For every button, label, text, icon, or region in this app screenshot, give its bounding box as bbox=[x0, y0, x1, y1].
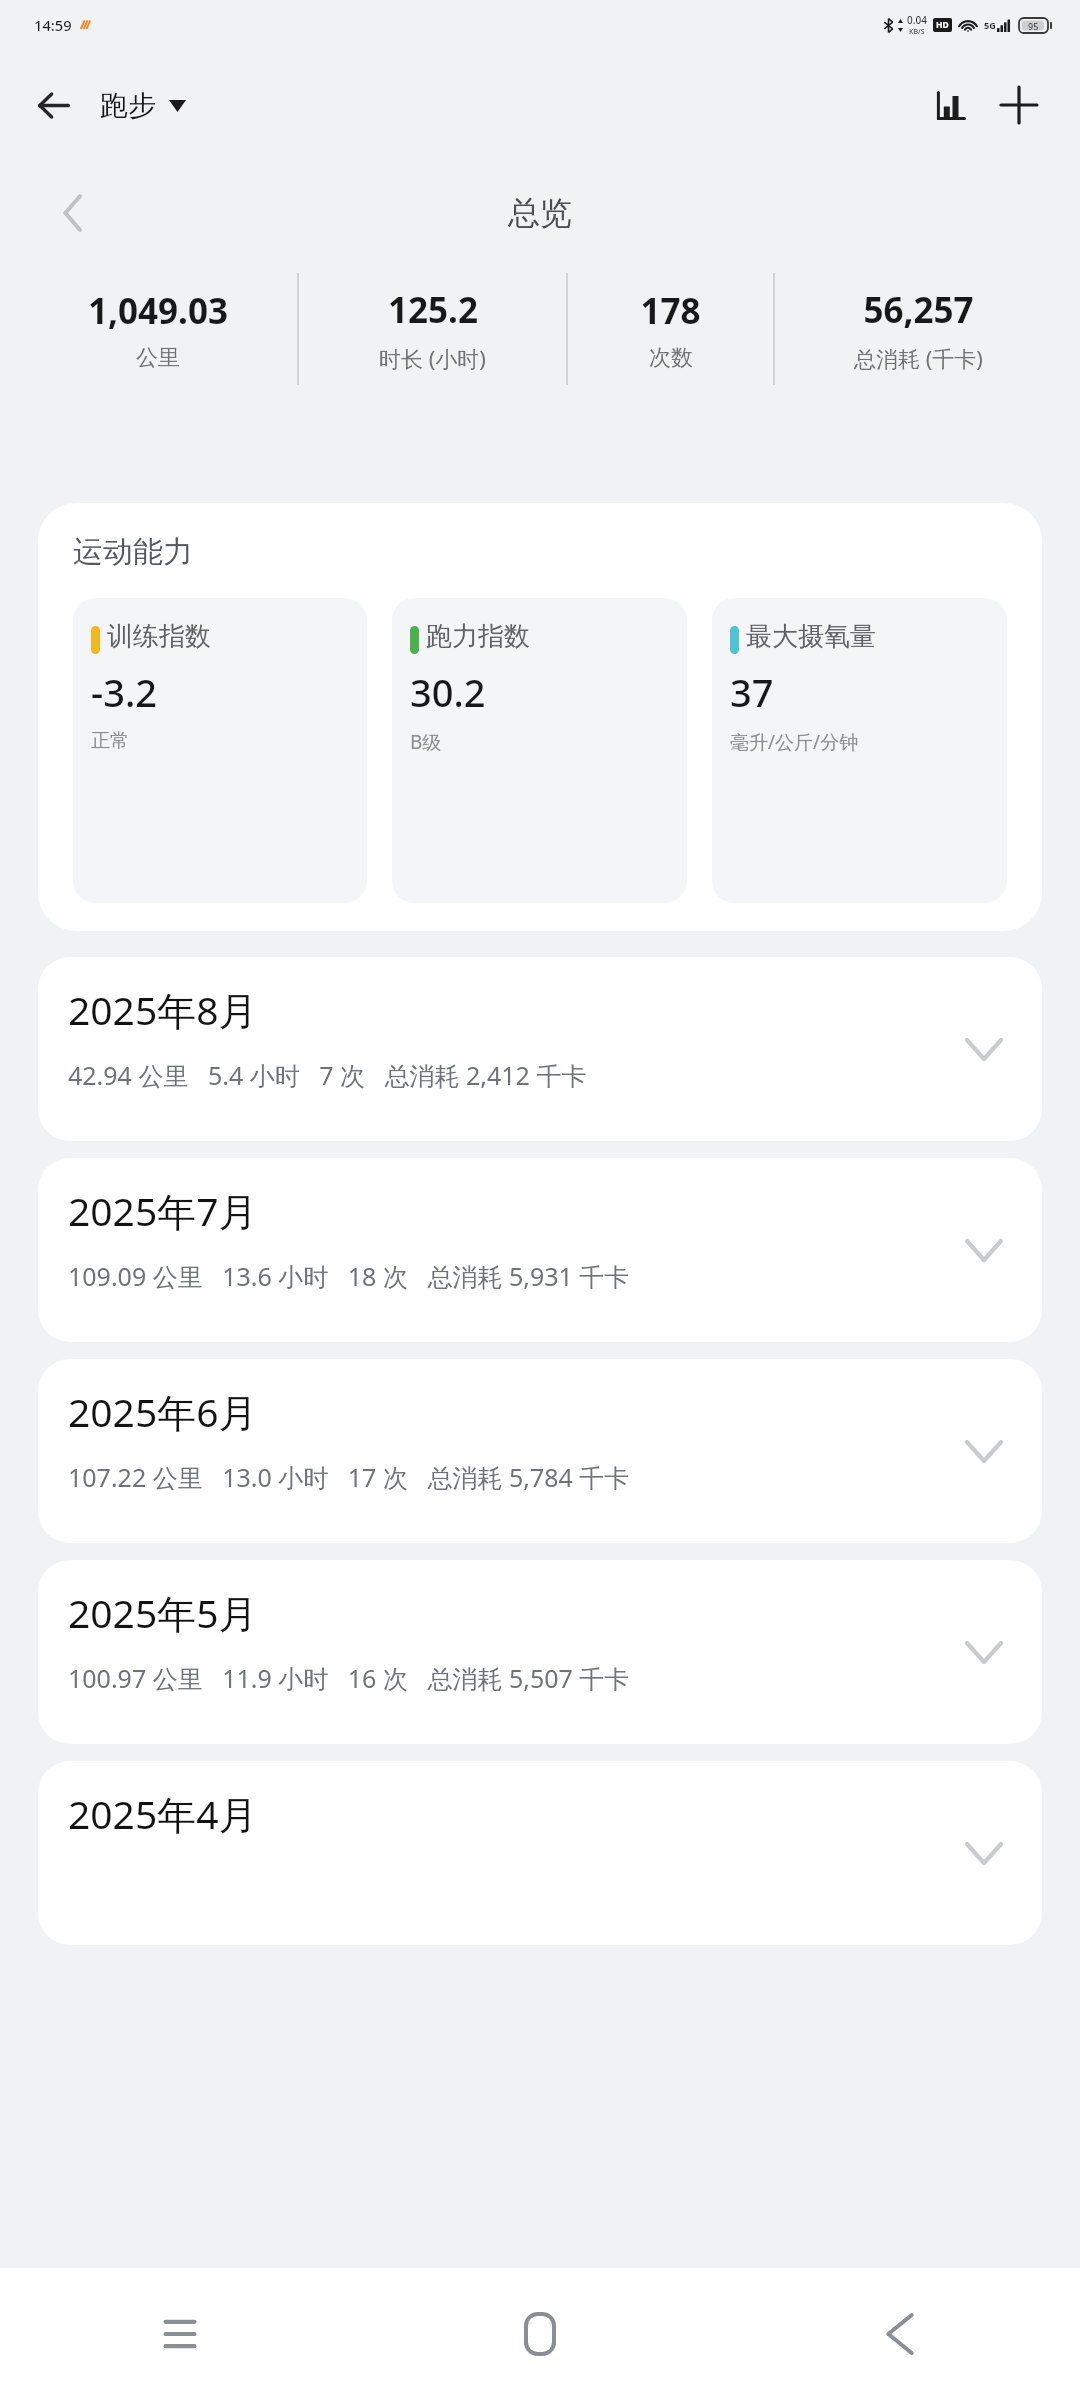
staticText: 2025年8月 bbox=[68, 983, 258, 1036]
button[interactable]: 1,049.03 bbox=[18, 265, 297, 393]
staticText: 37 bbox=[730, 666, 774, 718]
staticText: 次数 bbox=[649, 344, 693, 372]
staticText: 训练指数 bbox=[107, 620, 211, 653]
button[interactable]: 178 bbox=[568, 265, 773, 393]
staticText: 总消耗 (千卡) bbox=[854, 343, 983, 373]
staticText: 95 bbox=[1028, 20, 1039, 32]
button[interactable]: Add bbox=[984, 70, 1054, 140]
button[interactable]: Home bbox=[360, 2268, 720, 2400]
staticText: 2025年5月 bbox=[68, 1586, 258, 1639]
staticText: 2025年4月 bbox=[68, 1787, 258, 1840]
staticText: 30.2 bbox=[410, 666, 486, 718]
button[interactable]: Recents bbox=[0, 2268, 360, 2400]
staticText: 107.22 公里 13.0 小时 17 次 总消耗 5,784 千卡 bbox=[68, 1460, 630, 1494]
staticText: 时长 (小时) bbox=[379, 343, 486, 373]
button[interactable]: Previous bbox=[48, 188, 98, 238]
staticText: 正常 bbox=[91, 729, 129, 753]
staticText: 毫升/公斤/分钟 bbox=[730, 729, 859, 755]
button[interactable]: 2025年4月 bbox=[38, 1761, 1042, 1945]
button[interactable]: 2025年7月 bbox=[38, 1158, 1042, 1342]
staticText: 跑步 bbox=[100, 88, 156, 123]
staticText: 56,257 bbox=[863, 286, 974, 334]
button[interactable]: 跑步 bbox=[94, 82, 192, 129]
button[interactable]: Expand bbox=[956, 1624, 1012, 1680]
staticText: 100.97 公里 11.9 小时 16 次 总消耗 5,507 千卡 bbox=[68, 1661, 630, 1695]
staticText: 0.04 bbox=[907, 13, 927, 27]
staticText: -3.2 bbox=[91, 666, 158, 718]
staticText: B级 bbox=[410, 729, 442, 755]
staticText: 1,049.03 bbox=[88, 287, 228, 335]
staticText: 178 bbox=[640, 287, 701, 335]
staticText: 最大摄氧量 bbox=[746, 620, 876, 653]
staticText: 2025年6月 bbox=[68, 1385, 258, 1438]
staticText: 14:59 bbox=[34, 15, 72, 35]
staticText: 2025年7月 bbox=[68, 1184, 258, 1237]
staticText: 公里 bbox=[136, 344, 180, 372]
button[interactable]: 训练指数 bbox=[73, 598, 367, 903]
staticText: 109.09 公里 13.6 小时 18 次 总消耗 5,931 千卡 bbox=[68, 1259, 630, 1293]
button[interactable]: 125.2 bbox=[299, 265, 566, 393]
button[interactable]: Statistics bbox=[918, 72, 984, 138]
staticText: 总览 bbox=[508, 193, 572, 233]
button[interactable]: 56,257 bbox=[775, 265, 1062, 393]
staticText: 跑力指数 bbox=[426, 620, 530, 653]
staticText: KB/S bbox=[909, 27, 925, 37]
staticText: 运动能力 bbox=[73, 533, 193, 571]
staticText: HD bbox=[936, 19, 949, 31]
button[interactable]: 最大摄氧量 bbox=[712, 598, 1007, 903]
staticText: 125.2 bbox=[388, 286, 478, 334]
button[interactable]: Expand bbox=[956, 1021, 1012, 1077]
staticText: 42.94 公里 5.4 小时 7 次 总消耗 2,412 千卡 bbox=[68, 1058, 587, 1092]
button[interactable]: 跑力指数 bbox=[392, 598, 687, 903]
button[interactable]: Back bbox=[22, 74, 84, 136]
button[interactable]: 2025年6月 bbox=[38, 1359, 1042, 1543]
button[interactable]: 2025年5月 bbox=[38, 1560, 1042, 1744]
button[interactable]: 2025年8月 bbox=[38, 957, 1042, 1141]
button[interactable]: Back bbox=[720, 2268, 1080, 2400]
staticText: 5G bbox=[984, 19, 996, 31]
button[interactable]: 运动能力 bbox=[38, 503, 1042, 931]
button[interactable]: Expand bbox=[956, 1423, 1012, 1479]
button[interactable]: Expand bbox=[956, 1222, 1012, 1278]
